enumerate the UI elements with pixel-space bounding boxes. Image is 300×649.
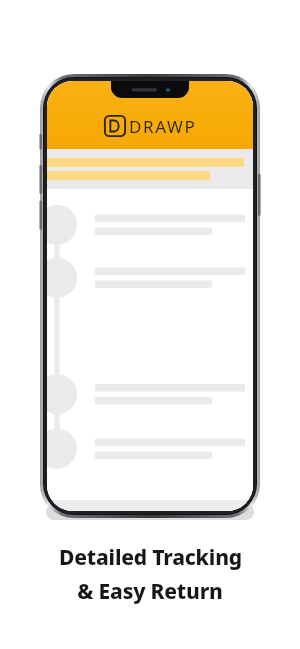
staticText: Detailed Tracking: [59, 543, 242, 572]
staticText: & Easy Return: [77, 577, 223, 606]
button[interactable]: DRAWP home: [47, 81, 253, 149]
button[interactable]: [47, 149, 253, 189]
staticText: DRAWP: [129, 115, 197, 137]
